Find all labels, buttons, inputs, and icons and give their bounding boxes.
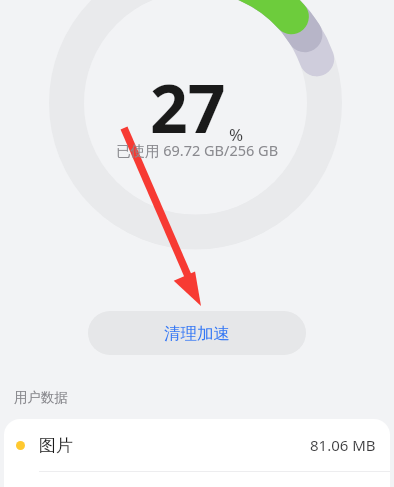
staticText: 用户数据	[14, 389, 68, 406]
staticText: 27	[150, 62, 226, 152]
staticText: 清理加速	[164, 323, 230, 344]
staticText: 81.06 MB	[310, 435, 376, 455]
staticText: 已使用 69.72 GB/256 GB	[0, 140, 394, 160]
staticText: %	[229, 123, 244, 146]
staticText: 图片	[39, 435, 73, 456]
button[interactable]: 清理加速	[88, 311, 306, 355]
other: Images category	[16, 441, 25, 450]
button[interactable]: Images category	[4, 419, 390, 471]
